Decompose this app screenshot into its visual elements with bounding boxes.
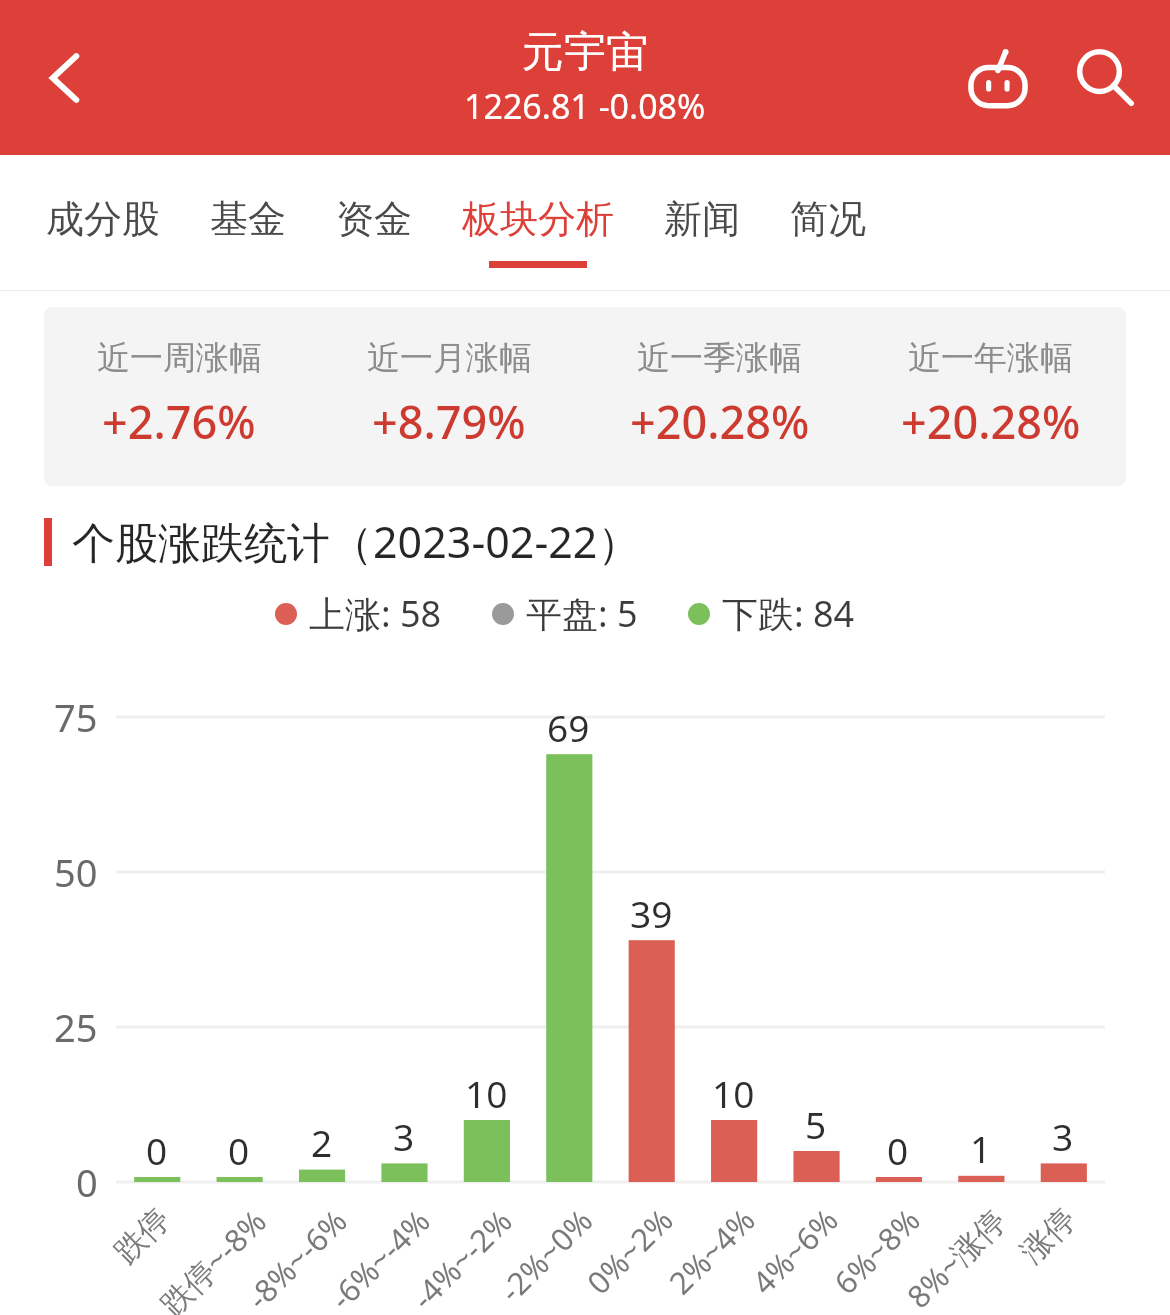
staticText: 1 xyxy=(970,1123,992,1173)
staticText: 8%~涨停 xyxy=(897,1199,1015,1315)
staticText: 3 xyxy=(393,1111,415,1161)
staticText: -2%~0% xyxy=(490,1199,601,1310)
button[interactable]: 资金 xyxy=(336,155,412,291)
staticText: 平盘: 5 xyxy=(526,589,638,638)
staticText: 成分股 xyxy=(46,195,160,243)
button[interactable]: 板块分析 xyxy=(462,155,614,291)
staticText: +2.76% xyxy=(102,391,256,452)
staticText: +20.28% xyxy=(901,391,1081,452)
staticText: 个股涨跌统计（2023-02-22） xyxy=(72,512,641,571)
staticText: -8%~-6% xyxy=(237,1200,356,1315)
staticText: 0 xyxy=(228,1125,250,1175)
button[interactable]: 新闻 xyxy=(664,155,740,291)
staticText: 75 xyxy=(54,691,98,743)
staticText: 5 xyxy=(805,1099,827,1149)
button[interactable]: AI assistant xyxy=(952,32,1044,124)
staticText: 上涨: 58 xyxy=(309,589,442,638)
staticText: 跌停 xyxy=(106,1200,178,1271)
button[interactable]: 成分股 xyxy=(46,155,160,291)
staticText: 基金 xyxy=(210,195,286,243)
staticText: 元宇宙 xyxy=(522,26,648,79)
staticText: 近一周涨幅 xyxy=(97,337,262,379)
staticText: 近一年涨幅 xyxy=(908,337,1073,379)
staticText: 6%~8% xyxy=(824,1199,928,1303)
staticText: 近一季涨幅 xyxy=(637,337,802,379)
button[interactable]: Search xyxy=(1058,32,1150,124)
staticText: 1226.81 -0.08% xyxy=(464,83,706,129)
staticText: 4%~6% xyxy=(742,1199,846,1303)
staticText: 50 xyxy=(54,846,98,898)
staticText: 0%~2% xyxy=(577,1199,681,1303)
staticText: 新闻 xyxy=(664,195,740,243)
staticText: -6%~-4% xyxy=(320,1200,439,1315)
staticText: 简况 xyxy=(790,195,866,243)
staticText: 跌停~-8% xyxy=(151,1200,275,1315)
button[interactable]: Back xyxy=(20,36,104,120)
staticText: +20.28% xyxy=(630,391,810,452)
staticText: 涨停 xyxy=(1012,1200,1084,1271)
staticText: -4%~-2% xyxy=(402,1200,521,1315)
staticText: 0 xyxy=(887,1125,909,1175)
button[interactable]: 基金 xyxy=(210,155,286,291)
staticText: 板块分析 xyxy=(462,195,614,243)
staticText: 39 xyxy=(630,888,673,938)
staticText: 下跌: 84 xyxy=(722,589,855,638)
staticText: 69 xyxy=(547,702,590,752)
staticText: 0 xyxy=(76,1156,98,1208)
staticText: 资金 xyxy=(336,195,412,243)
staticText: 10 xyxy=(712,1068,755,1118)
staticText: +8.79% xyxy=(372,391,526,452)
staticText: 3 xyxy=(1052,1111,1074,1161)
staticText: 0 xyxy=(146,1125,168,1175)
staticText: 25 xyxy=(54,1001,98,1053)
staticText: 2%~4% xyxy=(659,1199,763,1303)
staticText: 10 xyxy=(465,1068,508,1118)
staticText: 2 xyxy=(311,1117,333,1167)
button[interactable]: 简况 xyxy=(790,155,866,291)
staticText: 近一月涨幅 xyxy=(367,337,532,379)
